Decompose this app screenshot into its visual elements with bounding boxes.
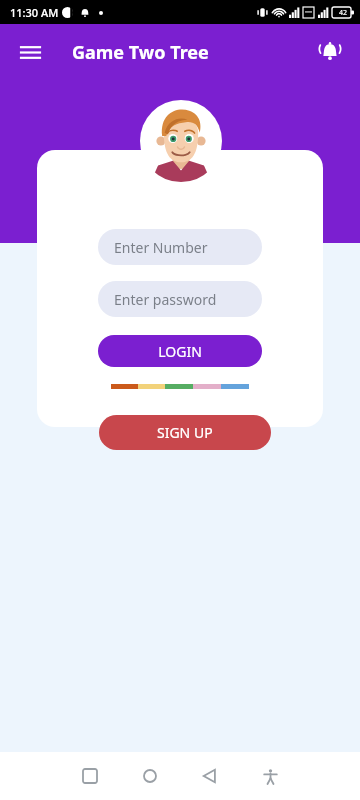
button[interactable]: Open navigation menu <box>10 32 50 72</box>
staticText: Game Two Tree <box>72 40 209 65</box>
button[interactable]: Accessibility <box>240 752 300 800</box>
staticText: Enter password <box>114 290 217 309</box>
button[interactable]: LOGIN <box>98 335 262 367</box>
staticText: 42 <box>339 8 348 18</box>
button[interactable]: Home <box>120 752 180 800</box>
button[interactable]: Notifications <box>310 32 350 72</box>
button[interactable]: Enter password <box>98 281 262 317</box>
button[interactable]: SIGN UP <box>99 415 271 450</box>
button[interactable]: Enter Number <box>98 229 262 265</box>
button[interactable]: Recent apps <box>60 752 120 800</box>
staticText: LOGIN <box>158 342 202 361</box>
staticText: 11:30 AM <box>10 5 59 20</box>
staticText: Enter Number <box>114 238 208 257</box>
staticText: SIGN UP <box>157 423 213 442</box>
button[interactable]: Back <box>180 752 240 800</box>
